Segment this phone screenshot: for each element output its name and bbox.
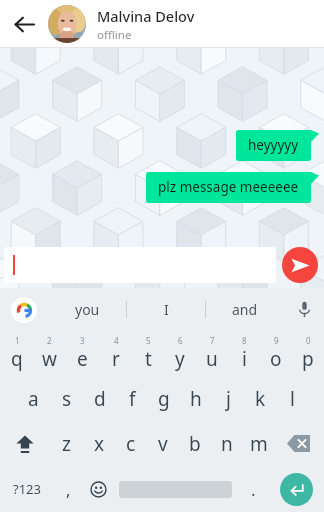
button[interactable]: Space bbox=[113, 466, 238, 512]
staticText: . bbox=[251, 478, 256, 501]
button[interactable]: h bbox=[180, 376, 212, 421]
staticText: j bbox=[226, 386, 231, 412]
staticText: 1 bbox=[15, 335, 20, 346]
staticText: I bbox=[164, 300, 169, 319]
button[interactable]: plz message meeeeee bbox=[146, 172, 319, 203]
staticText: r bbox=[112, 346, 120, 372]
button[interactable]: Send bbox=[282, 247, 318, 283]
button[interactable]: 2 bbox=[33, 331, 66, 376]
button[interactable]: v bbox=[147, 421, 179, 466]
button[interactable]: heyyyyy bbox=[236, 130, 319, 161]
button[interactable]: Profile photo bbox=[48, 5, 86, 43]
staticText: 6 bbox=[178, 335, 183, 346]
button[interactable]: Voice input bbox=[284, 288, 324, 331]
staticText: w bbox=[42, 346, 57, 372]
button[interactable]: c bbox=[115, 421, 147, 466]
staticText: 9 bbox=[274, 335, 279, 346]
staticText: 5 bbox=[146, 335, 151, 346]
button[interactable]: I bbox=[127, 288, 205, 331]
button[interactable]: 6 bbox=[164, 331, 196, 376]
staticText: ?123 bbox=[13, 480, 41, 498]
button[interactable]: k bbox=[244, 376, 276, 421]
staticText: a bbox=[28, 386, 39, 412]
staticText: t bbox=[145, 346, 152, 372]
staticText: y bbox=[175, 346, 185, 372]
button[interactable]: a bbox=[17, 376, 50, 421]
staticText: k bbox=[255, 386, 266, 412]
button[interactable] bbox=[4, 247, 276, 283]
button[interactable]: z bbox=[50, 421, 83, 466]
staticText: o bbox=[270, 346, 282, 372]
button[interactable]: Backspace bbox=[275, 421, 324, 466]
staticText: b bbox=[189, 431, 201, 457]
button[interactable]: 5 bbox=[132, 331, 164, 376]
staticText: 4 bbox=[114, 335, 119, 346]
staticText: Malvina Delov bbox=[97, 6, 195, 26]
button[interactable]: b bbox=[179, 421, 211, 466]
button[interactable]: Malvina Delov bbox=[97, 0, 324, 48]
button[interactable]: Shift bbox=[0, 421, 50, 466]
button[interactable]: j bbox=[212, 376, 244, 421]
staticText: q bbox=[11, 346, 23, 372]
staticText: p bbox=[302, 346, 314, 372]
staticText: l bbox=[290, 386, 295, 412]
staticText: and bbox=[232, 300, 258, 319]
staticText: heyyyyy bbox=[248, 136, 299, 154]
button[interactable]: n bbox=[211, 421, 243, 466]
button[interactable]: l bbox=[276, 376, 308, 421]
staticText: i bbox=[242, 346, 247, 372]
staticText: u bbox=[206, 346, 218, 372]
button[interactable]: d bbox=[83, 376, 116, 421]
button[interactable]: s bbox=[50, 376, 83, 421]
staticText: , bbox=[66, 478, 71, 501]
staticText: z bbox=[62, 431, 71, 457]
staticText: 7 bbox=[210, 335, 215, 346]
staticText: s bbox=[62, 386, 72, 412]
staticText: 8 bbox=[242, 335, 247, 346]
button[interactable]: f bbox=[116, 376, 148, 421]
button[interactable]: 7 bbox=[196, 331, 228, 376]
button[interactable]: 3 bbox=[66, 331, 99, 376]
button[interactable]: Back bbox=[0, 0, 48, 48]
staticText: c bbox=[126, 431, 136, 457]
button[interactable]: 9 bbox=[260, 331, 292, 376]
staticText: f bbox=[129, 386, 136, 412]
staticText: 0 bbox=[306, 335, 311, 346]
staticText: you bbox=[75, 300, 100, 319]
staticText: x bbox=[94, 431, 105, 457]
staticText: plz message meeeeee bbox=[158, 178, 299, 196]
button[interactable]: 1 bbox=[0, 331, 33, 376]
staticText: 3 bbox=[80, 335, 85, 346]
button[interactable]: Emoji bbox=[83, 466, 113, 512]
button[interactable]: , bbox=[53, 466, 83, 512]
button[interactable]: Google bbox=[0, 288, 48, 331]
button[interactable]: ?123 bbox=[0, 466, 53, 512]
staticText: offline bbox=[97, 27, 132, 43]
button[interactable]: x bbox=[83, 421, 115, 466]
button[interactable]: . bbox=[238, 466, 268, 512]
button[interactable]: g bbox=[148, 376, 180, 421]
button[interactable]: Enter bbox=[268, 466, 324, 512]
staticText: 2 bbox=[47, 335, 52, 346]
staticText: n bbox=[221, 431, 233, 457]
staticText: d bbox=[94, 386, 106, 412]
staticText: m bbox=[250, 431, 268, 457]
staticText: g bbox=[158, 386, 170, 412]
button[interactable]: 4 bbox=[99, 331, 132, 376]
staticText: e bbox=[77, 346, 88, 372]
button[interactable]: m bbox=[243, 421, 275, 466]
button[interactable]: 0 bbox=[292, 331, 324, 376]
button[interactable]: and bbox=[206, 288, 284, 331]
staticText: h bbox=[190, 386, 202, 412]
staticText: v bbox=[158, 431, 168, 457]
button[interactable]: you bbox=[48, 288, 126, 331]
button[interactable]: 8 bbox=[228, 331, 260, 376]
